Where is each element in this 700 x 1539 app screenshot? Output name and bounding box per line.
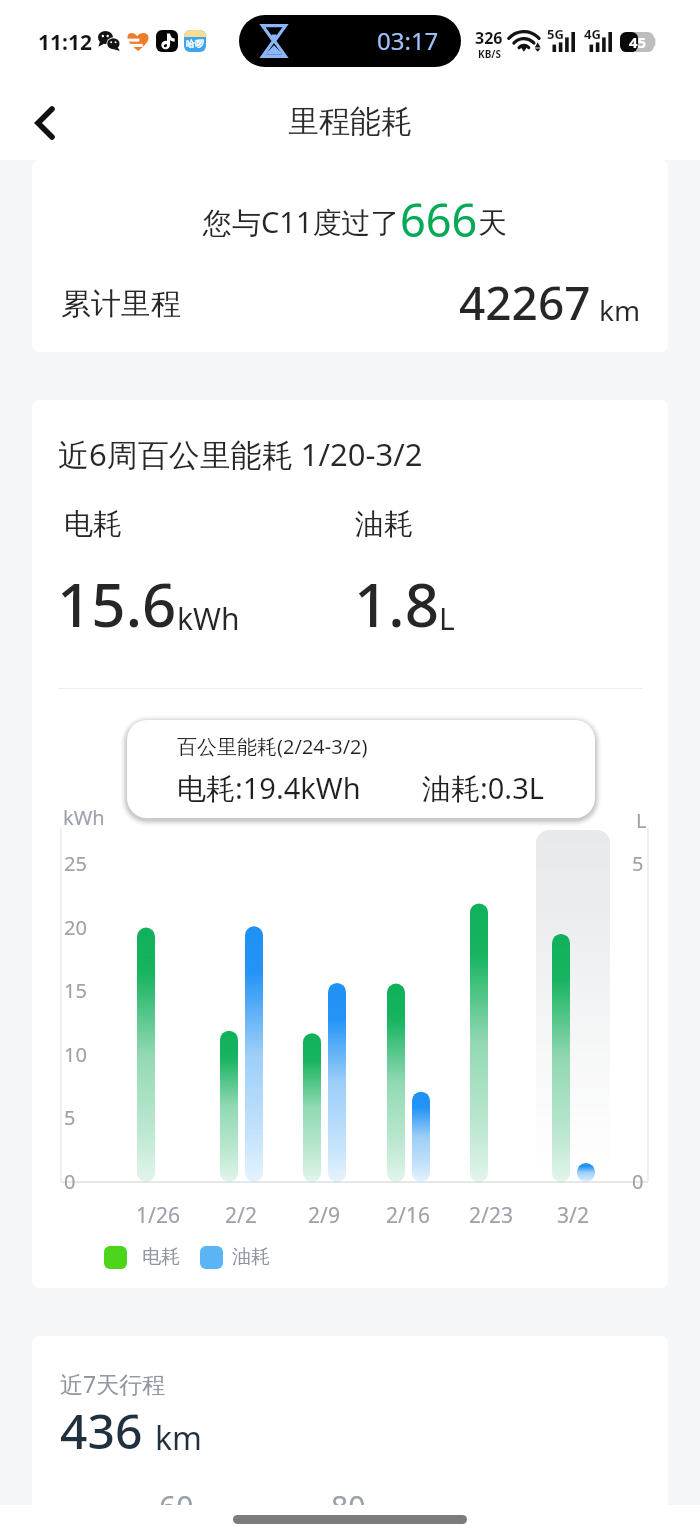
staticText: kWh: [63, 804, 105, 831]
staticText: 1.8: [354, 563, 439, 645]
staticText: 近6周百公里能耗 1/20-3/2: [58, 433, 423, 475]
staticText: 2/16: [368, 1201, 448, 1230]
staticText: KB/S: [478, 47, 501, 61]
staticText: kWh: [177, 598, 240, 639]
staticText: 5: [632, 850, 644, 877]
staticText: 60: [159, 1486, 194, 1508]
staticText: 2/9: [284, 1201, 364, 1230]
staticText: km: [155, 1416, 203, 1460]
staticText: 哈啰: [186, 38, 204, 49]
staticText: 1/26: [118, 1201, 198, 1230]
staticText: 10: [64, 1041, 87, 1068]
staticText: 15: [64, 977, 87, 1004]
staticText: 油耗:0.3L: [422, 768, 544, 808]
staticText: 4G: [584, 25, 601, 43]
staticText: 3/2: [533, 1201, 613, 1230]
staticText: 11:12: [38, 28, 92, 57]
staticText: 20: [64, 914, 87, 941]
staticText: 03:17: [377, 24, 439, 57]
staticText: 0: [632, 1168, 644, 1195]
staticText: 您与C11度过了: [203, 202, 400, 242]
staticText: 0: [64, 1168, 76, 1195]
staticText: 电耗:19.4kWh: [177, 768, 361, 808]
staticText: 电耗: [64, 506, 122, 543]
staticText: L: [636, 807, 647, 834]
staticText: 25: [64, 850, 87, 877]
staticText: 80: [331, 1486, 366, 1508]
staticText: 45: [629, 32, 647, 52]
staticText: 15.6: [57, 563, 177, 645]
staticText: 42267: [459, 271, 591, 334]
button[interactable]: Back: [17, 95, 73, 151]
staticText: L: [439, 598, 455, 639]
staticText: 5G: [547, 25, 564, 43]
staticText: 天: [478, 205, 507, 242]
staticText: 油耗: [232, 1245, 270, 1269]
staticText: 近7天行程: [60, 1368, 166, 1399]
staticText: 666: [400, 189, 478, 250]
staticText: km: [599, 291, 641, 329]
staticText: 326: [475, 27, 503, 49]
staticText: 2/2: [201, 1201, 281, 1230]
staticText: 百公里能耗(2/24-3/2): [177, 733, 368, 760]
staticText: 油耗: [355, 506, 413, 543]
staticText: 5: [64, 1104, 76, 1131]
staticText: 436: [60, 1398, 143, 1463]
staticText: 电耗: [142, 1245, 180, 1269]
staticText: 累计里程: [61, 285, 181, 323]
staticText: 2/23: [451, 1201, 531, 1230]
staticText: 里程能耗: [288, 102, 412, 141]
